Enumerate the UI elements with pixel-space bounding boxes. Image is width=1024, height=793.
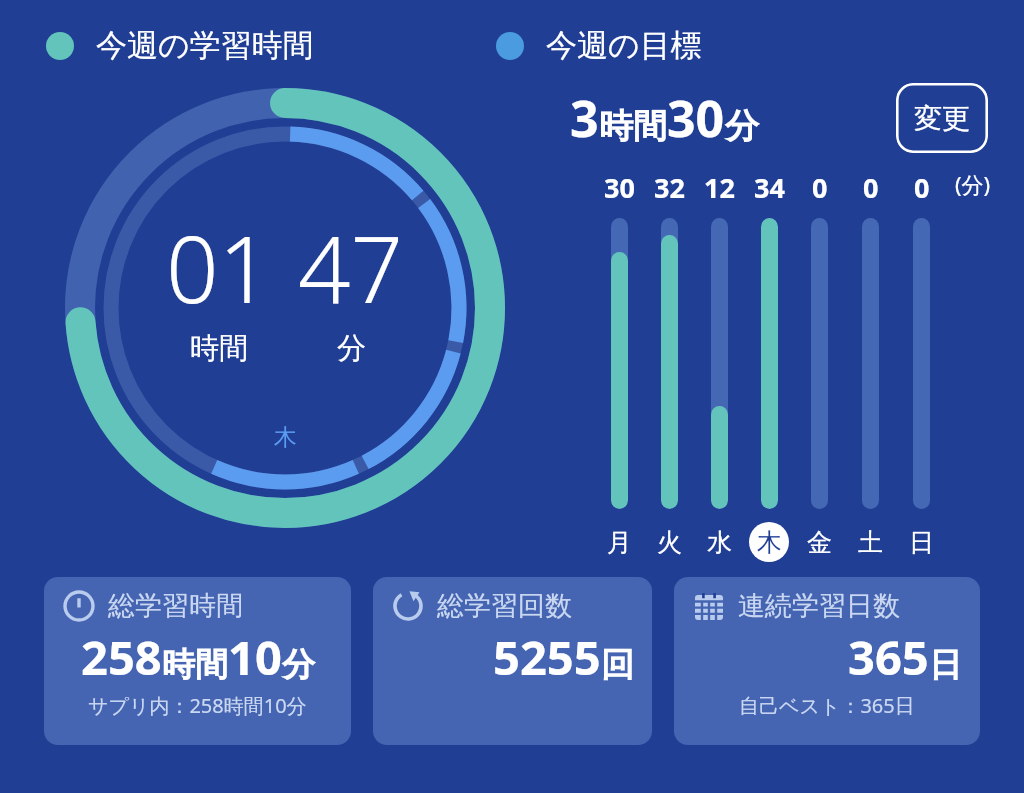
staticText: 総学習時間: [108, 589, 243, 623]
staticText: 5255: [493, 625, 601, 689]
other: 連続学習日数: [692, 589, 726, 623]
button[interactable]: 変更: [896, 83, 988, 153]
staticText: 回: [601, 644, 634, 686]
staticText: 日: [929, 644, 962, 686]
staticText: 47: [298, 205, 404, 330]
staticText: 自己ベスト：365日: [739, 692, 915, 719]
staticText: 0: [812, 169, 828, 206]
staticText: 3: [570, 84, 599, 152]
staticText: 30: [667, 84, 725, 152]
staticText: 01: [166, 205, 272, 330]
staticText: 0: [914, 169, 930, 206]
staticText: 日: [909, 527, 934, 558]
staticText: 0: [863, 169, 879, 206]
staticText: 木: [274, 423, 297, 452]
staticText: 365: [848, 625, 929, 689]
staticText: 32: [654, 169, 685, 206]
staticText: 水: [707, 527, 732, 558]
staticText: 12: [704, 169, 735, 206]
staticText: 連続学習日数: [738, 589, 900, 623]
staticText: 木: [757, 527, 782, 558]
staticText: 月: [607, 527, 632, 558]
staticText: 時間: [162, 644, 228, 686]
staticText: 分: [282, 644, 315, 686]
staticText: 時間: [190, 330, 248, 367]
staticText: 分: [337, 330, 366, 367]
staticText: 金: [807, 527, 832, 558]
staticText: 今週の学習時間: [96, 26, 314, 65]
staticText: 258: [81, 625, 162, 689]
staticText: 変更: [914, 101, 970, 136]
button[interactable]: 連続学習日数: [674, 577, 980, 745]
staticText: 30: [604, 169, 635, 206]
button[interactable]: 総学習回数: [373, 577, 652, 745]
staticText: 総学習回数: [437, 589, 572, 623]
staticText: 今週の目標: [546, 26, 702, 65]
staticText: 34: [754, 169, 785, 206]
button[interactable]: 総学習時間: [44, 577, 351, 745]
staticText: 10: [228, 625, 282, 689]
staticText: 土: [858, 527, 883, 558]
staticText: 分: [725, 105, 759, 148]
staticText: (分): [955, 169, 991, 199]
staticText: サプリ内：258時間10分: [88, 692, 307, 719]
staticText: 火: [657, 527, 682, 558]
staticText: 時間: [599, 105, 667, 148]
other: 総学習時間: [62, 589, 96, 623]
other: 総学習回数: [391, 589, 425, 623]
